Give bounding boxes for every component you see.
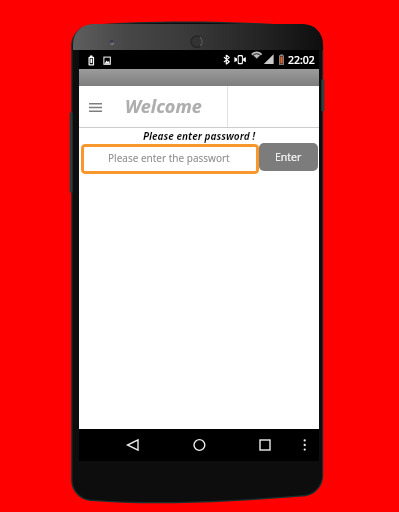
staticText: Please enter password !: [79, 129, 319, 143]
staticText: Please enter the passwort: [108, 151, 230, 165]
button[interactable]: Home: [193, 429, 217, 453]
button[interactable]: Please enter the passwort: [81, 144, 259, 174]
staticText: Welcome: [125, 94, 202, 119]
button[interactable]: More options: [299, 429, 323, 453]
button[interactable]: Menu: [85, 95, 105, 119]
button[interactable]: Recents: [253, 429, 277, 453]
button[interactable]: Enter: [259, 143, 318, 171]
staticText: Enter: [275, 150, 302, 164]
button[interactable]: Back: [121, 429, 145, 453]
staticText: 22:02: [288, 53, 315, 67]
